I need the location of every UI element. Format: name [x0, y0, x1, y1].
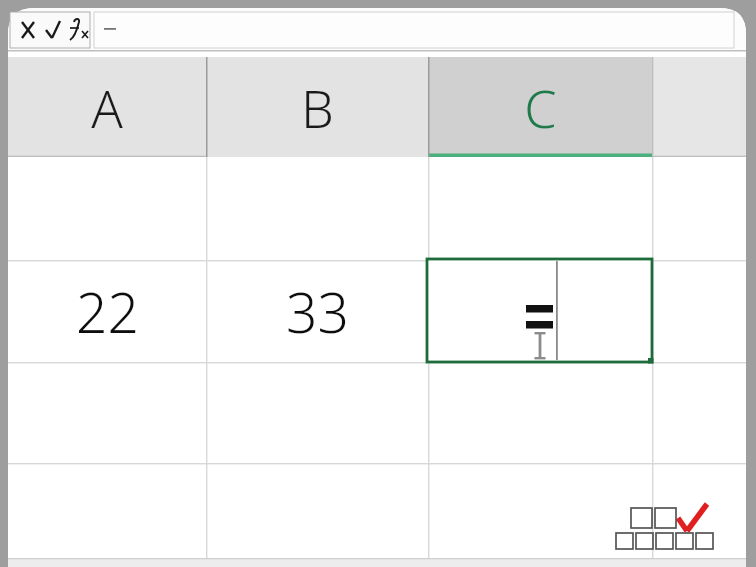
- button[interactable]: 33: [207, 260, 428, 362]
- button[interactable]: B: [207, 57, 428, 157]
- button[interactable]: Insert function: [62, 12, 90, 48]
- button[interactable]: C: [428, 57, 652, 157]
- staticText: C: [524, 72, 557, 143]
- staticText: B: [301, 72, 334, 143]
- button[interactable]: Cell C3, editing formula: [428, 260, 652, 362]
- staticText: 33: [286, 274, 349, 349]
- button[interactable]: 22: [8, 260, 206, 362]
- button[interactable]: Cancel: [10, 12, 36, 48]
- button[interactable]: Formula bar: [94, 12, 734, 48]
- button[interactable]: Enter: [36, 12, 62, 48]
- staticText: A: [91, 72, 123, 143]
- staticText: 22: [76, 274, 139, 349]
- button[interactable]: A: [8, 57, 206, 157]
